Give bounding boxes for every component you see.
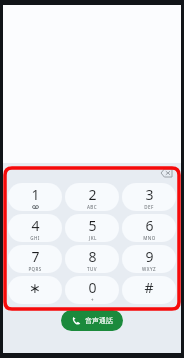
staticText: 音声通話 (85, 316, 113, 325)
button[interactable]: 9 (122, 245, 176, 273)
button[interactable]: 7 (8, 245, 62, 273)
staticText: # (144, 278, 154, 297)
button[interactable]: 8 (65, 245, 119, 273)
staticText: 5 (88, 216, 97, 235)
button[interactable]: 3 (122, 183, 176, 211)
button[interactable]: 0 (65, 276, 119, 304)
staticText: + (91, 297, 94, 303)
button[interactable]: 4 (8, 214, 62, 242)
button[interactable]: 2 (65, 183, 119, 211)
staticText: 7 (31, 247, 40, 266)
staticText: 8 (88, 247, 97, 266)
button[interactable]: ∗ (8, 276, 62, 304)
staticText: 0 (88, 278, 97, 297)
staticText: ∗ (29, 280, 41, 296)
button[interactable]: Backspace (157, 164, 175, 182)
staticText: 3 (145, 185, 154, 204)
staticText: GHI (30, 235, 40, 241)
staticText: TUV (87, 266, 97, 272)
staticText: MNO (143, 235, 156, 241)
staticText: DEF (144, 204, 154, 210)
button[interactable]: 音声通話 (61, 310, 123, 331)
staticText: ABC (87, 204, 97, 210)
staticText: 1 (31, 185, 40, 204)
staticText: JKL (89, 235, 97, 241)
staticText: 6 (145, 216, 154, 235)
staticText: PQRS (28, 266, 42, 272)
staticText: WXYZ (142, 266, 156, 272)
button[interactable]: 1 (8, 183, 62, 211)
staticText: 2 (88, 185, 97, 204)
button[interactable]: 6 (122, 214, 176, 242)
staticText: 9 (145, 247, 154, 266)
button[interactable]: 5 (65, 214, 119, 242)
button[interactable]: # (122, 276, 176, 304)
staticText: 4 (31, 216, 40, 235)
